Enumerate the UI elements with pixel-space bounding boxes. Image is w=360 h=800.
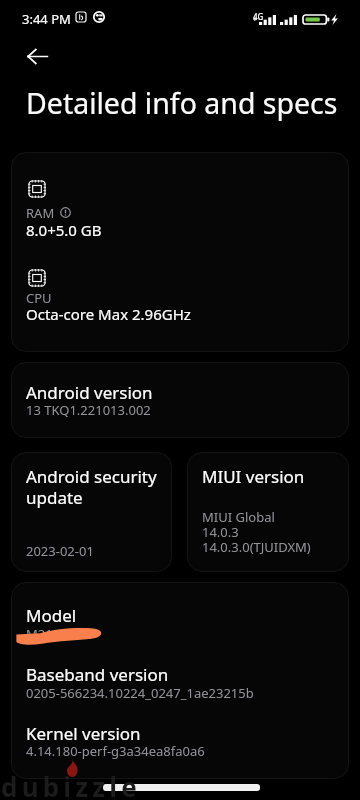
staticText: MIUI version: [202, 465, 305, 488]
button[interactable]: Baseband version: [11, 642, 349, 701]
button[interactable]: Android security update: [11, 452, 172, 572]
button[interactable]: Kernel version: [11, 701, 349, 760]
staticText: M2101K6G: [26, 625, 93, 643]
staticText: Octa-core Max 2.96GHz: [26, 304, 191, 324]
staticText: 4G: [253, 11, 264, 22]
button[interactable]: Back: [19, 38, 56, 75]
staticText: Android security update: [26, 465, 157, 509]
staticText: Android version: [26, 381, 153, 404]
button[interactable]: Model: [11, 582, 349, 642]
staticText: RAM: [26, 204, 55, 222]
staticText: Kernel version: [26, 722, 141, 745]
button[interactable]: RAM and CPU: [11, 152, 349, 352]
staticText: 2023-02-01: [26, 542, 94, 560]
staticText: Baseband version: [26, 663, 169, 686]
staticText: 4.14.180-perf-g3a34ea8fa0a6: [26, 742, 205, 760]
staticText: 0205-566234.10224_0247_1ae23215b: [26, 684, 254, 702]
staticText: 8.0+5.0 GB: [26, 220, 102, 240]
staticText: Model: [26, 604, 77, 627]
staticText: dubizzle: [1, 769, 142, 800]
staticText: +: [253, 15, 257, 24]
staticText: 13 TKQ1.221013.002: [26, 401, 151, 419]
staticText: 3:44 PM: [22, 10, 71, 28]
button[interactable]: Android version: [11, 362, 349, 438]
staticText: Detailed info and specs: [26, 84, 338, 123]
staticText: CPU: [26, 289, 52, 307]
staticText: MIUI Global 14.0.3 14.0.3.0(TJUIDXM): [202, 508, 311, 556]
button[interactable]: MIUI version: [187, 452, 349, 572]
